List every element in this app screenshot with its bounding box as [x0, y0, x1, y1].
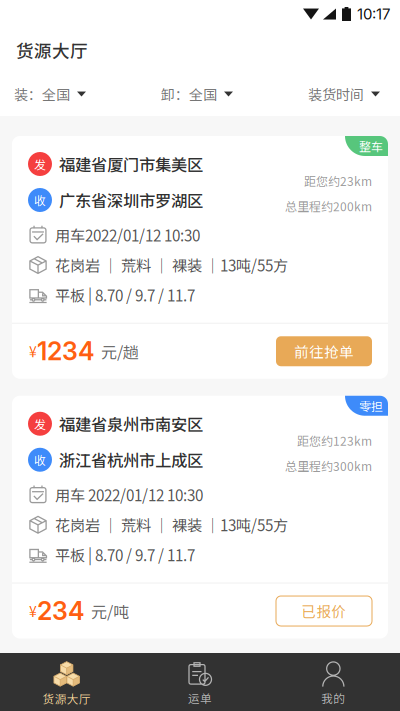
staticText: 收: [34, 451, 46, 468]
staticText: 装货时间: [308, 84, 364, 104]
staticText: ¥: [29, 341, 37, 361]
staticText: 用车2022/01/12 10:30: [55, 224, 200, 246]
staticText: 10:17: [357, 5, 390, 23]
staticText: 平板 | 8.70 / 9.7 / 11.7: [55, 284, 195, 306]
staticText: 花岗岩 ｜ 荒料 ｜ 裸装 ｜13吨/55方: [55, 254, 288, 276]
button[interactable]: 卸：全国: [161, 75, 233, 113]
staticText: 运单: [188, 690, 212, 706]
staticText: 收: [34, 191, 46, 209]
button[interactable]: 货源大厅: [0, 653, 133, 711]
staticText: 零担: [359, 397, 383, 414]
staticText: 广东省深圳市罗湖区: [59, 188, 203, 212]
staticText: 总里程约200km: [285, 197, 372, 215]
staticText: 距您约123km: [297, 432, 372, 449]
button[interactable]: 装：全国: [14, 75, 86, 113]
staticText: 浙江省杭州市上成区: [59, 448, 203, 472]
staticText: 货源大厅: [43, 690, 91, 707]
staticText: 我的: [321, 690, 345, 706]
staticText: 元/趟: [101, 340, 139, 363]
staticText: 234: [37, 596, 85, 626]
button[interactable]: 已报价: [276, 596, 372, 626]
staticText: 已报价: [301, 600, 346, 621]
button[interactable]: 运单: [133, 653, 267, 711]
staticText: 福建省厦门市集美区: [59, 152, 203, 176]
staticText: 花岗岩 ｜ 荒料 ｜ 裸装 ｜13吨/55方: [55, 513, 288, 535]
staticText: 发: [34, 415, 46, 432]
staticText: 用车 2022/01/12 10:30: [55, 483, 203, 505]
staticText: 1234: [37, 336, 95, 366]
staticText: 货源大厅: [16, 37, 88, 63]
button[interactable]: 我的: [267, 653, 400, 711]
staticText: 距您约23km: [304, 172, 372, 189]
staticText: 平板 | 8.70 / 9.7 / 11.7: [55, 543, 195, 565]
staticText: 福建省泉州市南安区: [59, 412, 203, 436]
staticText: 元/吨: [91, 599, 129, 623]
staticText: 卸：全国: [161, 84, 217, 104]
button[interactable]: 装货时间: [308, 75, 380, 113]
staticText: 整车: [359, 137, 383, 155]
staticText: 发: [34, 155, 46, 173]
staticText: 装：全国: [14, 84, 70, 104]
staticText: 总里程约300km: [285, 457, 372, 474]
staticText: 前往抢单: [294, 341, 354, 362]
staticText: ¥: [29, 601, 37, 621]
button[interactable]: 前往抢单: [276, 336, 372, 366]
